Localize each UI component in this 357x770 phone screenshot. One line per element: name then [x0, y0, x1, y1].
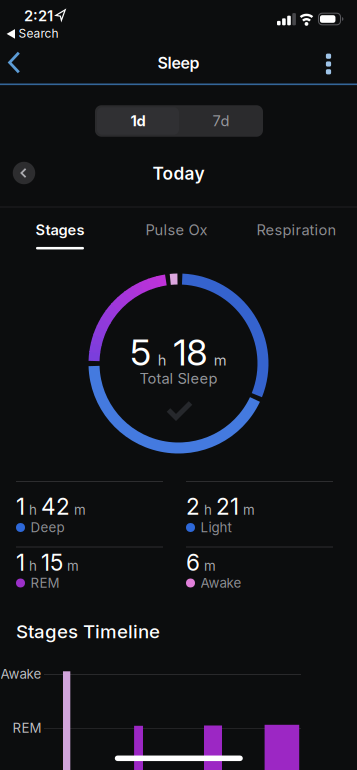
staticText: m — [67, 558, 79, 574]
staticText: Pulse Ox — [145, 221, 207, 239]
staticText: Sleep — [157, 54, 199, 72]
button[interactable]: 1d — [97, 107, 179, 135]
staticText: Awake — [200, 575, 241, 591]
staticText: Search — [18, 26, 58, 41]
staticText: 1 — [16, 549, 25, 576]
staticText: 15 — [41, 549, 63, 576]
staticText: h — [29, 502, 37, 518]
staticText: 2 — [186, 493, 200, 520]
staticText: Respiration — [256, 221, 336, 239]
button[interactable]: Pulse Ox — [126, 208, 226, 252]
staticText: Today — [152, 163, 204, 184]
staticText: 6 — [186, 549, 200, 576]
button[interactable]: Stages — [12, 208, 108, 252]
staticText: Deep — [30, 520, 64, 535]
staticText: REM — [30, 575, 59, 591]
button[interactable] — [308, 44, 348, 84]
staticText: 1 — [16, 493, 25, 520]
staticText: h — [29, 558, 37, 574]
staticText: m — [204, 558, 216, 574]
button[interactable]: Respiration — [241, 208, 351, 252]
staticText: Stages Timeline — [16, 620, 160, 642]
staticText: m — [243, 502, 255, 518]
staticText: 1d — [130, 112, 145, 130]
staticText: REM — [12, 720, 41, 736]
staticText: Light — [200, 520, 231, 535]
staticText: m — [74, 502, 86, 518]
staticText: 7d — [212, 112, 229, 130]
staticText: 18 — [173, 331, 207, 374]
staticText: Stages — [35, 221, 84, 239]
button[interactable] — [0, 42, 32, 82]
staticText: 42 — [41, 493, 70, 520]
staticText: 2:21 — [24, 7, 53, 25]
staticText: h — [158, 352, 167, 369]
staticText: 5 — [130, 331, 151, 374]
staticText: 21 — [216, 493, 239, 520]
button[interactable] — [13, 162, 35, 184]
button[interactable]: 7d — [180, 107, 262, 135]
staticText: m — [214, 352, 227, 369]
staticText: Total Sleep — [139, 370, 217, 387]
staticText: Awake — [0, 666, 41, 682]
staticText: h — [204, 502, 212, 518]
